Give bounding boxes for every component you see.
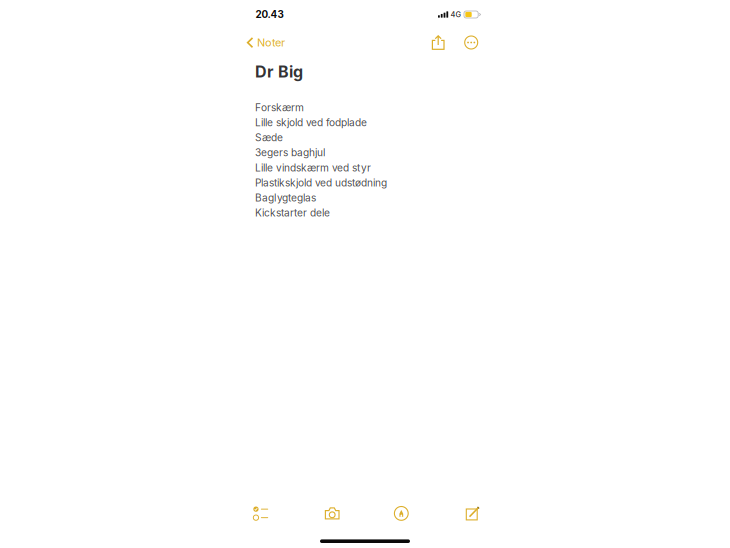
- staticText: 4G: [451, 10, 462, 19]
- staticText: Noter: [257, 36, 285, 49]
- button[interactable]: Checklist: [244, 500, 278, 526]
- staticText: Lille skjold ved fodplade: [255, 116, 367, 129]
- staticText: 20.43: [255, 8, 283, 20]
- staticText: Sæde: [255, 131, 283, 144]
- staticText: Baglygteglas: [255, 192, 316, 204]
- button[interactable]: Markup: [384, 500, 418, 526]
- staticText: Lille vindskærm ved styr: [255, 162, 371, 174]
- staticText: Forskærm: [255, 101, 304, 114]
- button[interactable]: Noter: [239, 29, 293, 56]
- button[interactable]: More: [455, 29, 488, 56]
- staticText: Kickstarter dele: [255, 207, 330, 219]
- staticText: Dr Big: [255, 62, 303, 81]
- button[interactable]: Camera: [315, 500, 349, 526]
- staticText: Plastikskjold ved udstødning: [255, 177, 387, 189]
- staticText: 3egers baghjul: [255, 146, 325, 159]
- button[interactable]: New Note: [456, 500, 490, 526]
- button[interactable]: Share: [422, 29, 455, 56]
